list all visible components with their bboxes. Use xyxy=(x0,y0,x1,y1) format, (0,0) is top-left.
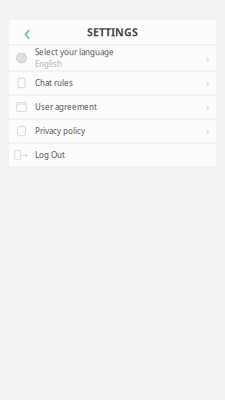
staticText: Select your language xyxy=(35,47,114,57)
button[interactable]: → xyxy=(9,144,216,166)
staticText: Chat rules xyxy=(35,78,73,88)
staticText: → xyxy=(21,150,28,160)
staticText: Privacy policy xyxy=(35,126,85,136)
button[interactable]: User agreement xyxy=(9,96,216,118)
button[interactable]: Select your language xyxy=(9,46,216,70)
staticText: ‹ xyxy=(23,17,30,47)
staticText: SETTINGS xyxy=(87,25,138,39)
button[interactable]: Privacy policy xyxy=(9,120,216,142)
staticText: › xyxy=(206,76,209,90)
staticText: User agreement xyxy=(35,102,97,112)
button[interactable]: Chat rules xyxy=(9,72,216,94)
staticText: › xyxy=(206,100,209,114)
staticText: › xyxy=(206,124,209,138)
staticText: English xyxy=(35,58,62,69)
button[interactable]: Back xyxy=(15,20,39,44)
staticText: Log Out xyxy=(35,150,65,160)
staticText: › xyxy=(206,51,209,65)
